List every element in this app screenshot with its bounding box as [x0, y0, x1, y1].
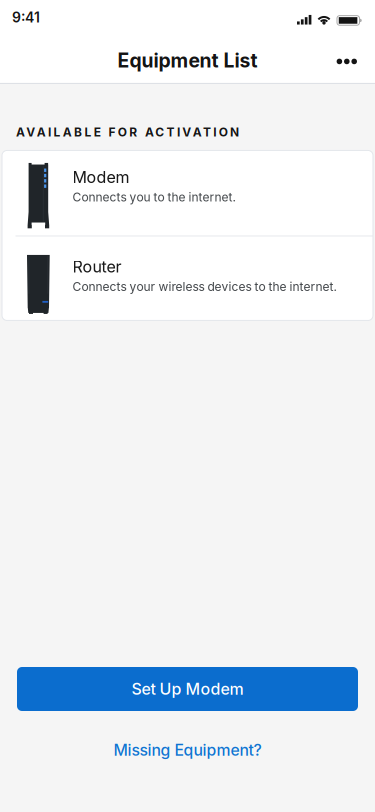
staticText: Router — [72, 257, 121, 276]
staticText: Connects your wireless devices to the in… — [72, 279, 336, 294]
staticText: Missing Equipment? — [113, 740, 261, 759]
staticText: Equipment List — [117, 49, 257, 72]
button[interactable]: More options — [325, 37, 369, 80]
button[interactable]: Set Up Modem — [17, 667, 358, 711]
staticText: 9:41 — [12, 9, 40, 26]
staticText: Modem — [72, 167, 129, 187]
staticText: Connects you to the internet. — [72, 190, 235, 204]
button[interactable]: Modem — [2, 150, 373, 235]
staticText: AVAILABLE FOR ACTIVATION — [16, 125, 239, 139]
button[interactable]: Router — [2, 236, 373, 320]
button[interactable]: Missing Equipment? — [0, 734, 375, 766]
staticText: Set Up Modem — [131, 679, 243, 699]
